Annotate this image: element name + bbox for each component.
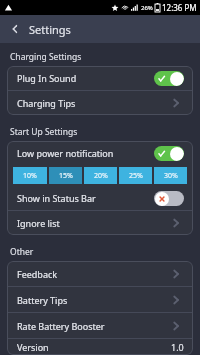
staticText: 15% (59, 171, 73, 181)
staticText: Low power notification (17, 147, 114, 159)
button[interactable]: Feedback (7, 261, 193, 286)
staticText: Plug In Sound (17, 72, 77, 84)
staticText: 30% (164, 171, 178, 181)
button[interactable]: Plug In Sound (7, 66, 193, 90)
button[interactable]: Toggle on (154, 146, 184, 161)
button[interactable]: Version (7, 339, 193, 355)
staticText: Feedback (17, 268, 58, 280)
staticText: Ignore list (17, 217, 60, 229)
staticText: 25% (129, 171, 143, 181)
button[interactable]: Ignore list (7, 211, 193, 235)
button[interactable]: 30% (154, 167, 187, 184)
button[interactable]: Low power notification (7, 141, 193, 165)
staticText: 12:36 PM (162, 2, 197, 13)
button[interactable]: Charging Tips (7, 91, 193, 115)
button[interactable]: Toggle on (154, 71, 184, 86)
button[interactable]: 15% (49, 167, 82, 184)
staticText: 10% (23, 171, 37, 181)
button[interactable]: Back (5, 19, 25, 39)
button[interactable]: Show in Status Bar (7, 186, 193, 210)
staticText: Charging Settings (10, 51, 82, 63)
staticText: Charging Tips (17, 97, 76, 109)
button[interactable]: 25% (119, 167, 152, 184)
button[interactable]: 10% (13, 167, 47, 184)
staticText: 26% (141, 4, 153, 12)
staticText: Show in Status Bar (17, 192, 96, 204)
staticText: 1.0 (171, 341, 184, 353)
staticText: Start Up Settings (10, 126, 78, 138)
staticText: 20% (94, 171, 108, 181)
staticText: Battery Tips (17, 294, 68, 306)
button[interactable]: Battery Tips (7, 287, 193, 312)
button[interactable]: Rate Battery Booster (7, 313, 193, 338)
staticText: Version (17, 341, 49, 353)
staticText: Settings (29, 22, 71, 37)
button[interactable]: Toggle off (154, 191, 184, 206)
button[interactable]: 20% (84, 167, 117, 184)
staticText: Rate Battery Booster (17, 320, 105, 332)
staticText: Other (10, 246, 34, 258)
